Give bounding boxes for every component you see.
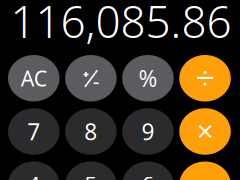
button[interactable]: % — [122, 55, 174, 101]
button[interactable]: Subtract — [179, 161, 231, 180]
button[interactable]: 8 — [65, 108, 117, 155]
button[interactable]: Multiply — [179, 108, 231, 155]
button[interactable]: 9 — [122, 108, 174, 155]
button[interactable]: AC — [8, 55, 59, 101]
staticText: 8 — [84, 116, 97, 146]
staticText: 6 — [141, 170, 154, 180]
button[interactable]: 4 — [8, 161, 59, 180]
staticText: % — [138, 63, 157, 93]
button[interactable]: Divide — [179, 55, 231, 101]
staticText: 116,085.86 — [10, 0, 231, 50]
staticText: 9 — [141, 116, 154, 146]
staticText: 5 — [84, 170, 97, 180]
staticText: 7 — [27, 116, 40, 146]
button[interactable]: Change sign — [65, 55, 117, 101]
button[interactable]: 5 — [65, 161, 117, 180]
staticText: 4 — [27, 170, 40, 180]
button[interactable]: 7 — [8, 108, 59, 155]
staticText: AC — [21, 64, 47, 92]
button[interactable]: 6 — [122, 161, 174, 180]
